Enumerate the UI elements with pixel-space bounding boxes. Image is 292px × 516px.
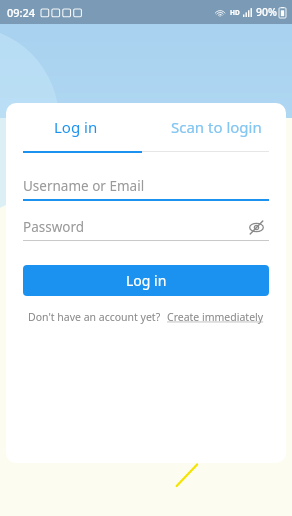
button[interactable]: Password — [23, 214, 243, 240]
staticText: HD — [230, 8, 240, 17]
staticText: Password — [23, 218, 85, 236]
button[interactable]: Log in — [23, 265, 269, 296]
staticText: Create immediately — [167, 310, 264, 324]
staticText: Don't have an account yet? — [28, 310, 161, 324]
button[interactable]: Scan to login — [146, 103, 286, 151]
button[interactable]: Username or Email — [23, 173, 269, 201]
staticText: Log in — [54, 117, 98, 137]
staticText: Username or Email — [23, 177, 145, 195]
staticText: Scan to login — [171, 117, 262, 137]
staticText: 90% — [256, 5, 277, 19]
staticText: 09:24 — [7, 5, 36, 20]
staticText: Log in — [126, 271, 167, 290]
button[interactable]: Log in — [6, 103, 146, 151]
button[interactable]: Create immediately — [167, 310, 264, 324]
button[interactable]: Show password — [243, 214, 269, 240]
